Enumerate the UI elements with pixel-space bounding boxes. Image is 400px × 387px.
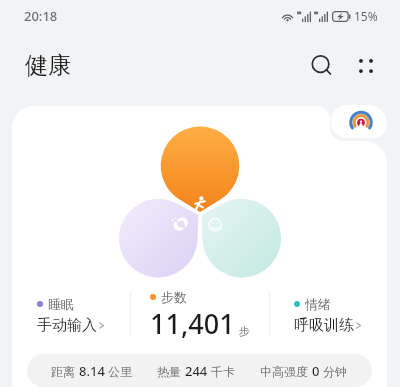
staticText: 步数 [161,289,187,305]
staticText: 呼吸训练 [294,316,354,335]
button[interactable]: Health assistant [331,105,387,138]
staticText: 手动输入 [37,316,97,335]
button[interactable]: 睡眠 [12,284,130,346]
staticText: 20:18 [24,7,58,25]
staticText: 11,401 [150,305,235,342]
staticText: 0 [312,362,320,380]
button[interactable]: Search [300,44,344,88]
button[interactable]: 距离 [27,354,372,387]
staticText: 公里 [105,363,133,379]
staticText: 距离 [51,363,79,379]
staticText: 睡眠 [48,296,74,312]
staticText: 8.14 [79,362,105,380]
staticText: 热量 [157,363,185,379]
staticText: 15% [354,8,378,24]
button[interactable]: 步数 [131,284,269,346]
staticText: 步 [239,324,250,338]
staticText: 健康 [25,51,71,80]
staticText: 中高强度 [260,363,312,379]
button[interactable]: More options [344,44,388,88]
button[interactable]: 情绪 [270,284,387,346]
staticText: 情绪 [305,296,331,312]
staticText: 千卡 [208,363,236,379]
staticText: 分钟 [320,363,348,379]
button[interactable]: 睡眠 [12,106,387,387]
staticText: 244 [185,362,208,380]
